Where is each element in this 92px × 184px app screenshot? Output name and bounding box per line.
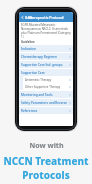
staticText: Indication: [21, 47, 69, 51]
button[interactable]: Monitoring and Tools Parameters: [19, 91, 73, 98]
staticText: Now with: [29, 141, 64, 151]
staticText: Chemotherapy Regimen: [21, 55, 69, 59]
staticText: Therapeutic Protocol: [28, 15, 64, 20]
button[interactable]: References: [19, 107, 73, 114]
staticText: Monitoring and Tools Parameters: [21, 93, 69, 97]
button[interactable]: Safety Parameters and Reverse Instructio…: [19, 99, 73, 106]
staticText: Other Supportive Therapy: [25, 85, 69, 89]
staticText: Safety Parameters and Reverse Instructio…: [21, 101, 69, 105]
staticText: Antiemetic Therapy: [25, 78, 69, 82]
staticText: References: [21, 109, 69, 113]
staticText: Supportive Care Ind. groups: [21, 63, 69, 67]
button[interactable]: Antiemetic Therapy: [23, 76, 73, 83]
button[interactable]: Indication: [19, 45, 73, 52]
staticText: Supportive Care: [21, 71, 71, 75]
staticText: NCCN Treatment: [3, 154, 89, 168]
staticText: EGFR-Mutated Metastatic Nonsquamous NSCL…: [21, 23, 71, 39]
button[interactable]: Other Supportive Therapy: [23, 83, 73, 90]
button[interactable]: Supportive Care: [19, 69, 73, 76]
staticText: Guideline: [21, 40, 35, 44]
staticText: Protocols: [22, 168, 70, 182]
button[interactable]: Back: [19, 14, 35, 20]
button[interactable]: Supportive Care Ind. groups: [19, 61, 73, 68]
button[interactable]: Chemotherapy Regimen: [19, 53, 73, 60]
staticText: Back: [25, 15, 33, 19]
